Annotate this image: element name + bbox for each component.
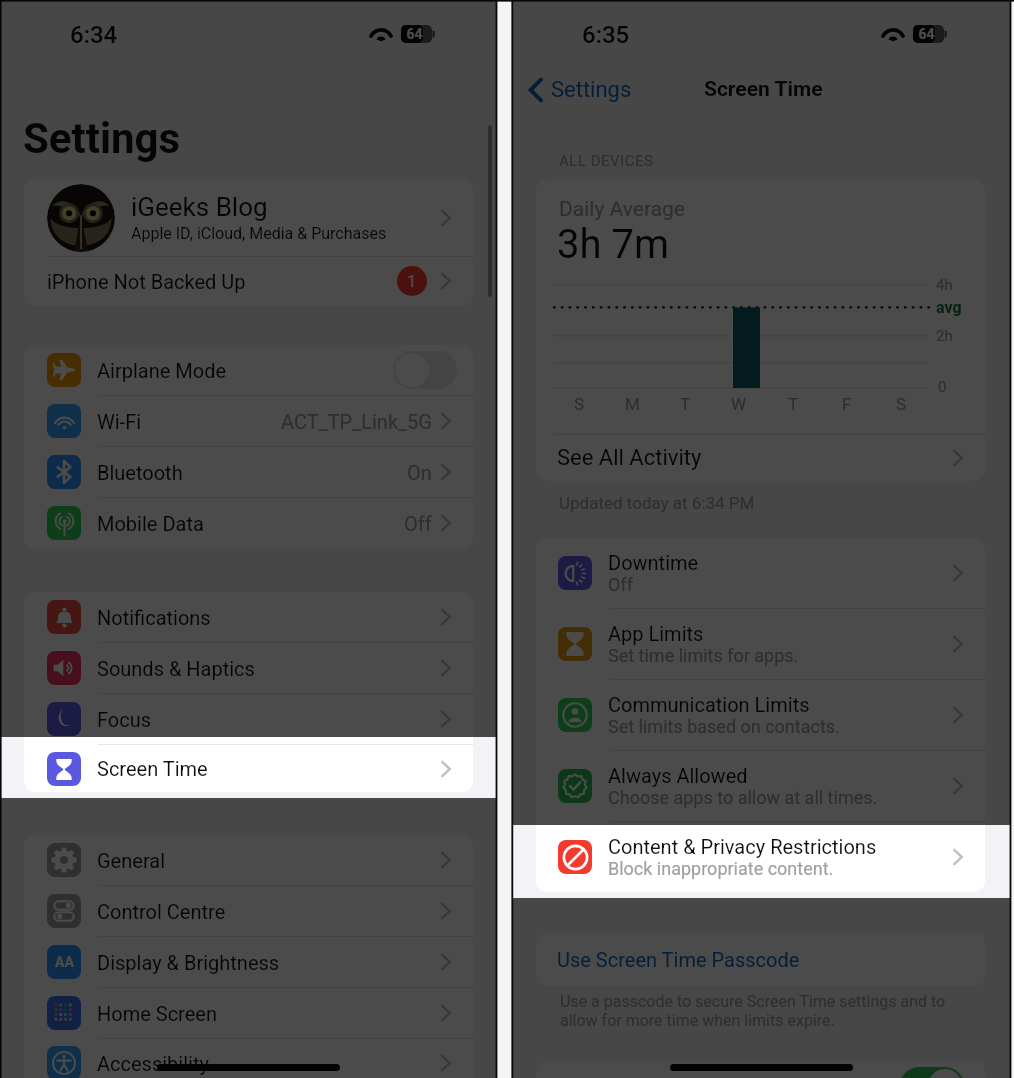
staticText: T (680, 394, 691, 414)
button[interactable]: Content & Privacy Restrictions (536, 822, 985, 892)
staticText: Display & Brightness (97, 951, 280, 974)
staticText: W (731, 394, 747, 414)
staticText: Bluetooth (97, 461, 183, 484)
staticText: 0 (938, 378, 947, 396)
staticText: 6:35 (582, 21, 630, 49)
staticText: Set time limits for apps. (608, 645, 799, 666)
staticText: Updated today at 6:34 PM (559, 493, 755, 513)
staticText: Off (608, 574, 633, 595)
staticText: Wi-Fi (97, 410, 142, 433)
staticText: Apple ID, iCloud, Media & Purchases (131, 224, 387, 243)
staticText: Sounds & Haptics (97, 657, 255, 680)
staticText: T (788, 394, 799, 414)
staticText: Settings (23, 114, 181, 163)
button[interactable]: Use Screen Time Passcode (536, 933, 985, 986)
staticText: See All Activity (557, 445, 702, 471)
staticText: 6:34 (70, 21, 118, 49)
staticText: ALL DEVICES (559, 152, 654, 170)
button[interactable]: iGeeks Blog (24, 179, 473, 256)
staticText: Control Centre (97, 900, 226, 923)
staticText: S (896, 394, 907, 414)
staticText: Settings (551, 77, 632, 103)
staticText: App Limits (608, 622, 704, 645)
staticText: S (574, 394, 585, 414)
button[interactable]: Always Allowed (536, 751, 985, 821)
button[interactable]: iPhone Not Backed Up (24, 257, 473, 305)
button[interactable]: Notifications (24, 592, 473, 642)
staticText: Home Screen (97, 1002, 217, 1025)
staticText: iGeeks Blog (131, 192, 268, 222)
staticText: Content & Privacy Restrictions (608, 835, 877, 858)
staticText: 64 (406, 26, 423, 42)
button[interactable]: Mobile Data (24, 498, 473, 548)
staticText: Daily Average (559, 197, 685, 222)
staticText: Airplane Mode (97, 359, 227, 382)
button[interactable]: Focus (24, 694, 473, 744)
staticText: 1 (407, 271, 417, 291)
staticText: Focus (97, 708, 152, 731)
staticText: Mobile Data (97, 512, 204, 535)
staticText: On (407, 461, 432, 484)
button[interactable]: Bluetooth (24, 447, 473, 497)
button[interactable]: Control Centre (24, 886, 473, 936)
staticText: Accessibility (97, 1052, 209, 1075)
staticText: Choose apps to allow at all times. (608, 787, 878, 808)
button[interactable]: Sounds & Haptics (24, 643, 473, 693)
button[interactable]: Downtime (536, 538, 985, 608)
button[interactable]: Accessibility (24, 1039, 473, 1078)
staticText: 2h (936, 327, 953, 345)
staticText: AA (55, 954, 74, 970)
button[interactable]: Share Across Devices (536, 1061, 985, 1078)
staticText: Always Allowed (608, 764, 748, 787)
button[interactable]: General (24, 835, 473, 885)
staticText: 4h (936, 276, 953, 294)
staticText: iPhone Not Backed Up (47, 270, 246, 293)
staticText: ACT_TP_Link_5G (281, 410, 432, 433)
button[interactable]: Home Screen (24, 988, 473, 1038)
button[interactable]: See All Activity (536, 435, 985, 481)
button[interactable]: App Limits (536, 609, 985, 679)
staticText: Screen Time (97, 757, 208, 780)
button[interactable]: AA (24, 937, 473, 987)
staticText: Use Screen Time Passcode (557, 948, 800, 971)
staticText: Off (404, 512, 432, 535)
staticText: Set limits based on contacts. (608, 716, 840, 737)
button[interactable]: Back to Settings (527, 72, 632, 108)
staticText: 3h 7m (557, 221, 669, 268)
staticText: Notifications (97, 606, 211, 629)
staticText: Downtime (608, 551, 699, 574)
staticText: 64 (918, 26, 935, 42)
staticText: Screen Time (704, 77, 823, 102)
staticText: General (97, 849, 166, 872)
button[interactable]: Airplane Mode (24, 345, 473, 395)
staticText: M (625, 394, 640, 414)
staticText: F (842, 394, 852, 414)
staticText: avg (936, 298, 962, 317)
staticText: Block inappropriate content. (608, 858, 834, 879)
staticText: Communication Limits (608, 693, 810, 716)
button[interactable]: Communication Limits (536, 680, 985, 750)
button[interactable]: Wi-Fi (24, 396, 473, 446)
button[interactable]: Screen Time (24, 745, 473, 792)
staticText: Use a passcode to secure Screen Time set… (560, 992, 952, 1030)
